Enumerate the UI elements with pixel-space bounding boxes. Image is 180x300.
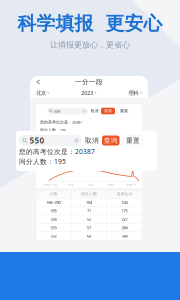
button[interactable]: 查询 (102, 135, 119, 145)
staticText: 查询 (104, 136, 118, 145)
staticText: 692 (50, 233, 56, 239)
staticText: 64 (87, 233, 91, 239)
button[interactable]: 重置 (123, 135, 142, 145)
button[interactable]: 返回 (36, 79, 41, 85)
staticText: 同分人数：195 (40, 127, 66, 133)
button[interactable]: 重置 (117, 108, 131, 114)
staticText: 348 (121, 233, 127, 239)
button[interactable]: 理科 (128, 90, 142, 96)
staticText: 388~1 (127, 183, 137, 186)
staticText: 取消 (90, 108, 98, 113)
staticText: 696~700 (46, 200, 60, 205)
staticText: 460 (108, 183, 114, 186)
staticText: 同分人数：195 (19, 157, 66, 166)
staticText: 696~700 (43, 183, 57, 186)
staticText: 理科 (128, 90, 138, 96)
staticText: 取消 (85, 136, 99, 145)
button[interactable]: 查询 (101, 108, 115, 114)
staticText: 分数 (49, 191, 57, 196)
staticText: 北京 (36, 90, 46, 96)
button[interactable]: 取消 (90, 108, 99, 113)
staticText: 一分一段 (75, 78, 103, 86)
staticText: 550 (54, 108, 60, 114)
staticText: 695 (50, 208, 56, 213)
button[interactable]: 北京 (36, 90, 50, 96)
staticText: 52 (87, 216, 91, 222)
staticText: 同分人数 (81, 191, 97, 196)
staticText: 科学填报 更安心 (17, 12, 162, 35)
staticText: 您的高考位次是：20387 (19, 147, 95, 156)
staticText: 重置 (120, 108, 128, 113)
staticText: 查询 (104, 108, 112, 113)
staticText: 550 (30, 135, 45, 146)
staticText: 284 (121, 225, 127, 230)
staticText: 693 (50, 225, 56, 230)
staticText: 104 (86, 200, 92, 205)
staticText: 2023 (81, 89, 93, 97)
staticText: 71 (87, 208, 91, 213)
staticText: 您的高考位次是：20387 (40, 119, 82, 125)
staticText: 让填报更放心，更省心 (50, 40, 130, 50)
staticText: 694 (50, 216, 56, 222)
button[interactable]: 取消 (82, 135, 102, 145)
staticText: 227 (121, 216, 127, 222)
staticText: 532 (88, 183, 94, 186)
staticText: 57 (87, 225, 91, 230)
button[interactable]: 2023 (81, 89, 97, 97)
staticText: 高考位次 (116, 191, 132, 196)
staticText: 重置 (126, 136, 140, 145)
staticText: 104 (121, 200, 127, 205)
staticText: 604 (68, 183, 74, 186)
staticText: 175 (121, 208, 127, 213)
